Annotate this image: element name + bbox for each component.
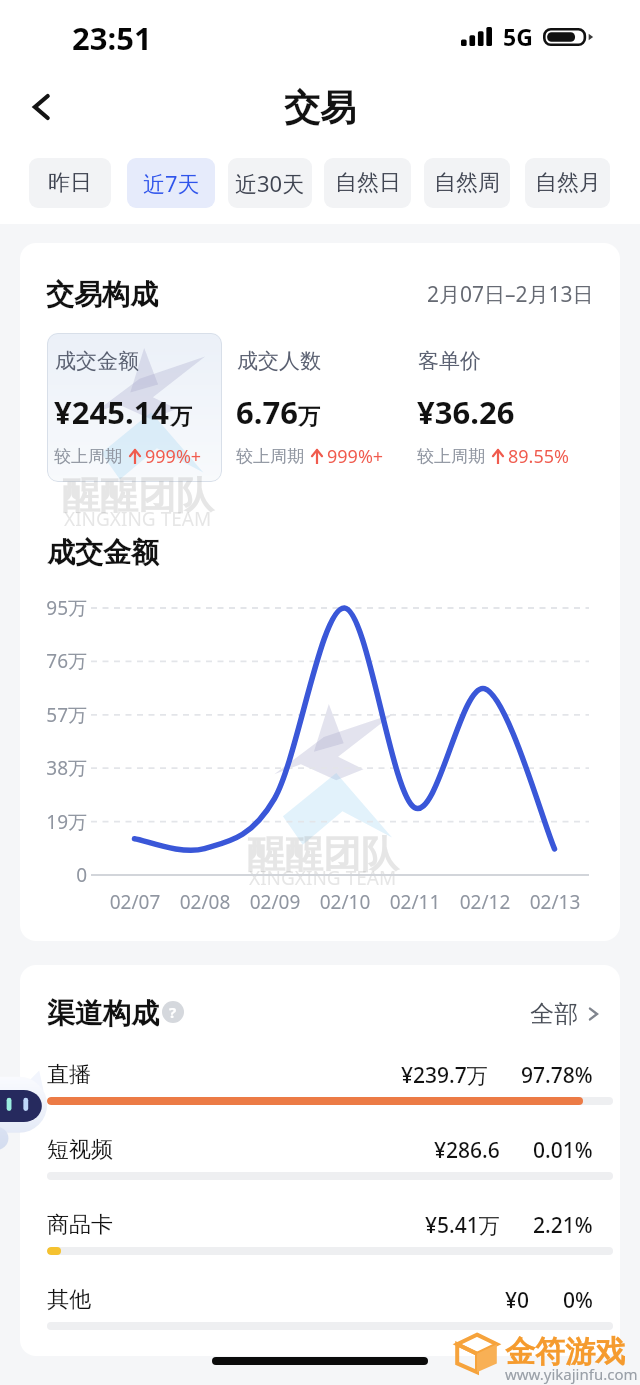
staticText: XINGXING TEAM xyxy=(64,506,212,532)
staticText: 95万 xyxy=(20,595,87,621)
staticText: 昨日 xyxy=(48,169,92,197)
staticText: 其他 xyxy=(47,1286,91,1314)
staticText: 0% xyxy=(563,1286,593,1315)
button[interactable]: Help xyxy=(162,1001,184,1023)
staticText: XINGXING TEAM xyxy=(249,865,397,891)
staticText: ? xyxy=(169,1002,177,1022)
staticText: 交易 xyxy=(284,85,356,130)
button[interactable]: 成交金额 xyxy=(54,333,232,482)
staticText: 交易构成 xyxy=(46,277,158,312)
staticText: 0.01% xyxy=(533,1136,593,1165)
staticText: 89.55% xyxy=(508,444,569,469)
staticText: 自然日 xyxy=(335,169,401,197)
staticText: 2月07日–2月13日 xyxy=(427,280,594,309)
staticText: 自然周 xyxy=(434,169,500,197)
staticText: 全部 xyxy=(530,999,578,1029)
button[interactable]: 商品卡 xyxy=(47,1203,593,1247)
staticText: 成交金额 xyxy=(47,535,159,570)
button[interactable]: 成交人数 xyxy=(236,333,414,482)
staticText: 23:51 xyxy=(72,17,152,59)
button[interactable]: 自然周 xyxy=(424,158,510,208)
staticText: 醒醒团队 xyxy=(247,830,399,878)
staticText: 醒醒团队 xyxy=(62,471,214,519)
staticText: 19万 xyxy=(20,809,87,835)
staticText: 成交金额 xyxy=(55,348,139,374)
staticText: 0 xyxy=(20,862,87,888)
button[interactable]: 直播 xyxy=(47,1053,593,1097)
staticText: ¥245.14 xyxy=(54,391,170,433)
staticText: 较上周期 xyxy=(236,446,304,467)
staticText: 999%+ xyxy=(327,444,384,469)
staticText: 较上周期 xyxy=(54,446,122,467)
staticText: 近30天 xyxy=(235,168,305,198)
staticText: 97.78% xyxy=(521,1061,593,1090)
staticText: ¥239.7万 xyxy=(401,1061,488,1090)
staticText: 999%+ xyxy=(145,444,202,469)
staticText: 76万 xyxy=(20,648,87,674)
button[interactable]: 近30天 xyxy=(228,158,312,208)
staticText: 自然月 xyxy=(535,169,601,197)
staticText: 渠道构成 xyxy=(47,996,159,1031)
staticText: 万 xyxy=(170,403,192,431)
staticText: 02/11 xyxy=(375,889,455,915)
staticText: 02/10 xyxy=(305,889,385,915)
button[interactable]: 昨日 xyxy=(29,158,111,208)
staticText: 较上周期 xyxy=(417,446,485,467)
button[interactable]: 短视频 xyxy=(47,1128,593,1172)
button[interactable]: 自然月 xyxy=(525,158,610,208)
staticText: ¥36.26 xyxy=(417,391,515,433)
staticText: 商品卡 xyxy=(47,1211,113,1239)
staticText: 客单价 xyxy=(418,348,481,374)
button[interactable]: Back xyxy=(17,83,64,130)
staticText: 02/08 xyxy=(165,889,245,915)
staticText: 万 xyxy=(298,403,320,431)
staticText: 02/09 xyxy=(235,889,315,915)
staticText: 57万 xyxy=(20,702,87,728)
staticText: ¥0 xyxy=(505,1286,530,1315)
button[interactable]: 自然日 xyxy=(324,158,411,208)
button[interactable]: 客单价 xyxy=(417,333,595,482)
staticText: 02/13 xyxy=(515,889,595,915)
staticText: ¥286.6 xyxy=(434,1136,500,1165)
staticText: 02/12 xyxy=(445,889,525,915)
button[interactable] xyxy=(47,333,222,482)
staticText: 38万 xyxy=(20,755,87,781)
staticText: 短视频 xyxy=(47,1136,113,1164)
button[interactable]: 其他 xyxy=(47,1278,593,1322)
button[interactable]: 近7天 xyxy=(127,158,215,208)
staticText: 6.76 xyxy=(236,391,298,433)
staticText: 成交人数 xyxy=(237,348,321,374)
staticText: www.yikajinfu.com xyxy=(505,1364,638,1384)
button[interactable]: 全部 xyxy=(530,999,599,1029)
staticText: 02/07 xyxy=(95,889,175,915)
staticText: 近7天 xyxy=(143,168,200,198)
staticText: 金符游戏 xyxy=(505,1333,625,1371)
staticText: 直播 xyxy=(47,1061,91,1089)
staticText: 5G xyxy=(503,21,533,52)
staticText: ¥5.41万 xyxy=(425,1211,500,1240)
staticText: 2.21% xyxy=(533,1211,593,1240)
